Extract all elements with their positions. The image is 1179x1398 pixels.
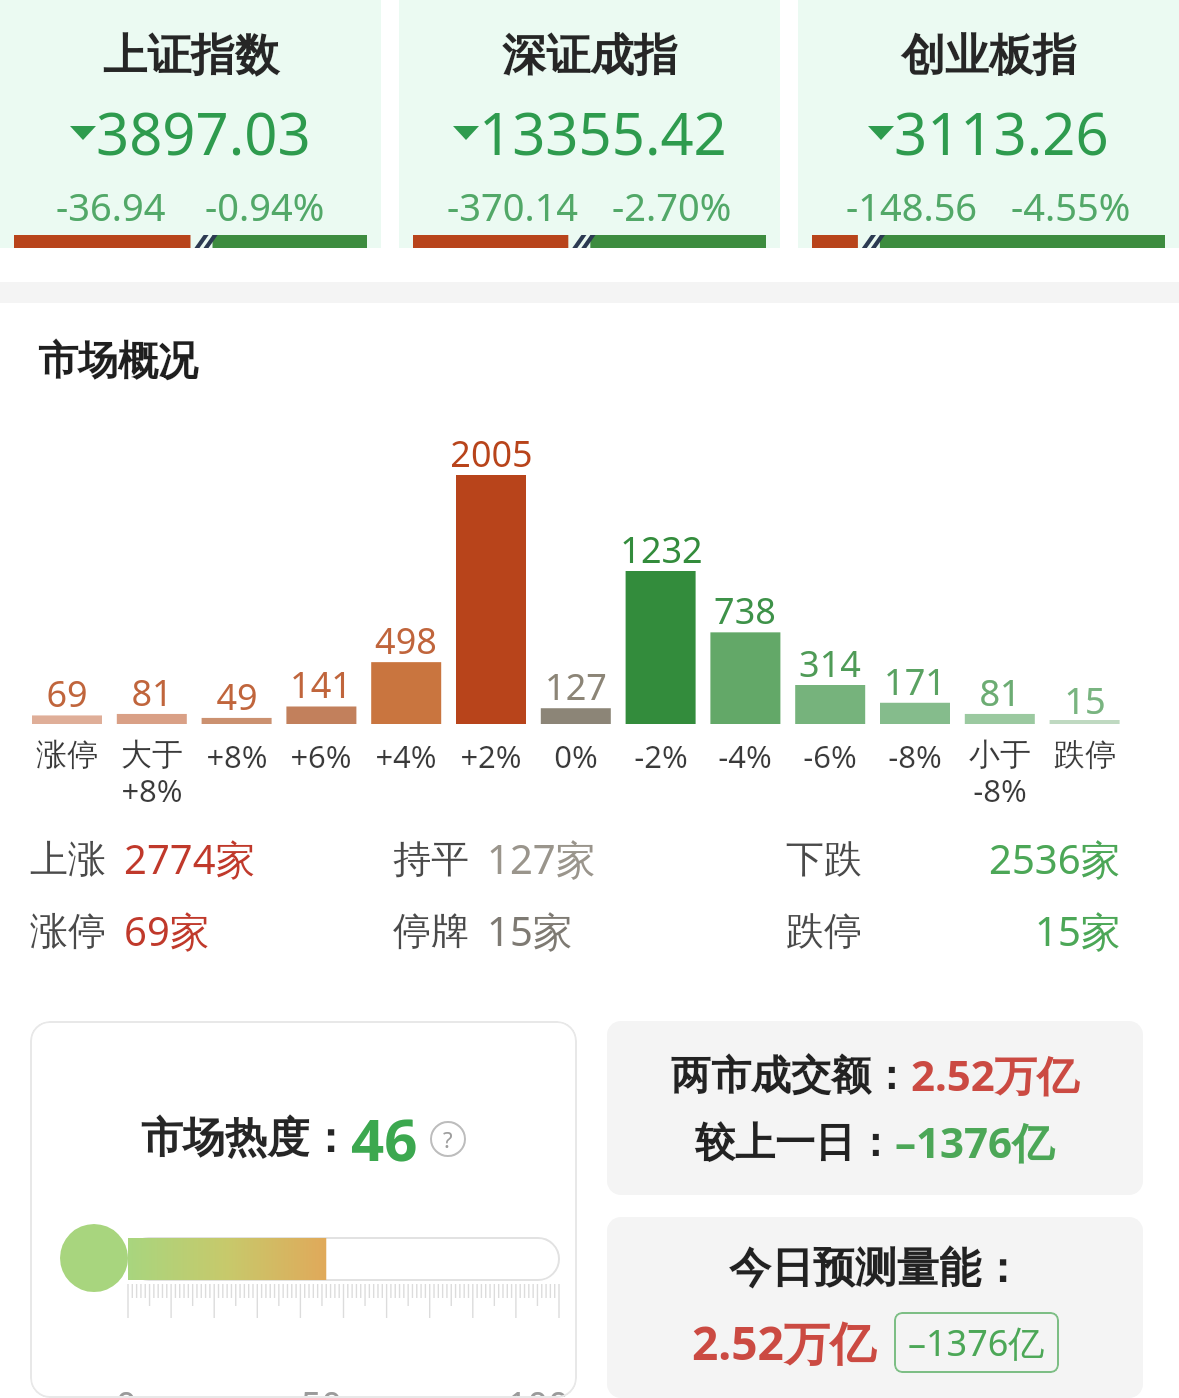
staticText: 13355.42 [479, 93, 727, 172]
staticText: +6% [290, 735, 352, 777]
staticText: 较上一日： [695, 1117, 895, 1167]
staticText: 市场热度： [141, 1112, 351, 1165]
button[interactable]: 帮助 [430, 1121, 466, 1157]
staticText: 171 [884, 657, 946, 706]
staticText: 2.52万亿 [692, 1311, 876, 1374]
staticText: -370.14 [447, 180, 579, 232]
staticText: 69 [46, 669, 88, 718]
staticText: -148.56 [846, 180, 978, 232]
staticText: 15 [1064, 676, 1106, 725]
staticText: -0.94% [205, 180, 325, 232]
staticText: 141 [290, 660, 352, 709]
staticText: +2% [460, 735, 522, 777]
staticText: 上涨 [30, 835, 106, 883]
staticText: -2.70% [612, 180, 732, 232]
staticText: 3113.26 [894, 93, 1109, 172]
staticText: -6% [803, 735, 857, 777]
button[interactable]: 深证成指 [399, 0, 780, 248]
staticText: –1376亿 [908, 1318, 1045, 1367]
staticText: 127家 [487, 831, 596, 886]
staticText: 涨停 [30, 907, 106, 955]
staticText: 2.52万亿 [911, 1046, 1079, 1103]
staticText: 小于 -8% [969, 735, 1031, 811]
staticText: 81 [131, 668, 173, 717]
staticText: 15家 [1035, 903, 1121, 958]
staticText: 市场概况 [38, 335, 198, 385]
staticText: 上证指数 [103, 28, 279, 83]
staticText: 2005 [450, 429, 533, 478]
staticText: 两市成交额： [671, 1050, 911, 1100]
staticText: 100 [507, 1380, 569, 1398]
staticText: 创业板指 [901, 28, 1077, 83]
button[interactable]: 市场热度： [30, 1021, 577, 1398]
staticText: –1376亿 [895, 1113, 1055, 1170]
staticText: 2536家 [989, 831, 1121, 886]
staticText: 738 [714, 586, 776, 635]
staticText: 498 [375, 616, 437, 665]
staticText: 持平 [393, 835, 469, 883]
button[interactable]: 两市成交额： [607, 1021, 1143, 1195]
button[interactable]: 今日预测量能： [607, 1217, 1143, 1398]
staticText: 46 [351, 1099, 418, 1178]
staticText: ? [443, 1124, 453, 1154]
staticText: 2774家 [124, 831, 256, 886]
staticText: 涨停 [36, 735, 98, 774]
staticText: 今日预测量能： [729, 1242, 1023, 1295]
staticText: 81 [979, 668, 1021, 717]
staticText: 大于 +8% [121, 735, 183, 811]
staticText: 跌停 [1054, 735, 1116, 774]
staticText: 1232 [620, 525, 703, 574]
staticText: 15家 [487, 903, 573, 958]
staticText: 3897.03 [96, 93, 311, 172]
staticText: 49 [216, 672, 258, 721]
staticText: 0% [554, 735, 598, 777]
staticText: 69家 [124, 903, 210, 958]
staticText: -4% [718, 735, 772, 777]
staticText: +8% [206, 735, 268, 777]
button[interactable]: 上证指数 [0, 0, 381, 248]
staticText: 127 [545, 662, 607, 711]
staticText: 50 [301, 1380, 343, 1398]
staticText: 314 [799, 639, 861, 688]
staticText: -36.94 [56, 180, 166, 232]
staticText: 下跌 [786, 835, 862, 883]
staticText: -2% [634, 735, 688, 777]
button[interactable]: 创业板指 [798, 0, 1179, 248]
staticText: 深证成指 [502, 28, 678, 83]
staticText: -8% [888, 735, 942, 777]
staticText: 0 [116, 1380, 137, 1398]
staticText: +4% [375, 735, 437, 777]
staticText: -4.55% [1011, 180, 1131, 232]
staticText: 跌停 [786, 907, 862, 955]
staticText: 停牌 [393, 907, 469, 955]
